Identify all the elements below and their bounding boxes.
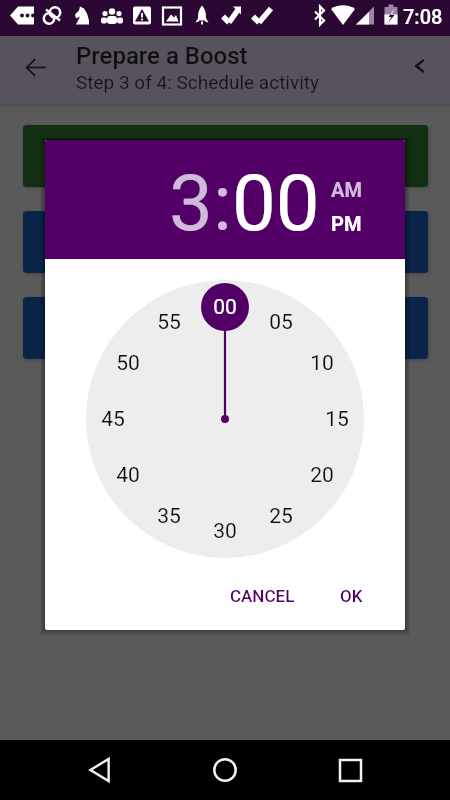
- button[interactable]: Recent apps: [326, 746, 374, 794]
- button[interactable]: PM: [331, 212, 362, 235]
- staticText: 7:08: [403, 5, 443, 28]
- staticText: 40: [116, 463, 140, 488]
- button[interactable]: [23, 297, 428, 359]
- staticText: 35: [157, 504, 181, 529]
- staticText: CANCEL: [230, 586, 295, 606]
- button[interactable]: AM: [331, 178, 362, 201]
- button[interactable]: Next step: [398, 44, 442, 88]
- staticText: 30: [213, 519, 237, 544]
- button[interactable]: [23, 211, 428, 273]
- staticText: OK: [340, 586, 363, 606]
- button[interactable]: 00: [232, 158, 320, 249]
- button[interactable]: CANCEL: [218, 576, 307, 616]
- staticText: 45: [101, 407, 125, 432]
- staticText: 50: [116, 351, 140, 376]
- button[interactable]: OK: [328, 576, 375, 616]
- staticText: Prepare a Boost: [76, 42, 248, 70]
- staticText: 15: [325, 407, 349, 432]
- button[interactable]: [23, 125, 428, 187]
- staticText: 05: [269, 310, 293, 335]
- button[interactable]: Back: [76, 746, 124, 794]
- staticText: 25: [269, 504, 293, 529]
- staticText: 20: [310, 463, 334, 488]
- staticText: :: [213, 158, 232, 249]
- button[interactable]: Back: [11, 43, 59, 91]
- button[interactable]: Home: [201, 746, 249, 794]
- staticText: 55: [157, 310, 181, 335]
- staticText: Step 3 of 4: Schedule activity: [76, 71, 320, 93]
- button[interactable]: 3: [169, 158, 213, 249]
- staticText: 00: [213, 295, 237, 320]
- staticText: 10: [310, 351, 334, 376]
